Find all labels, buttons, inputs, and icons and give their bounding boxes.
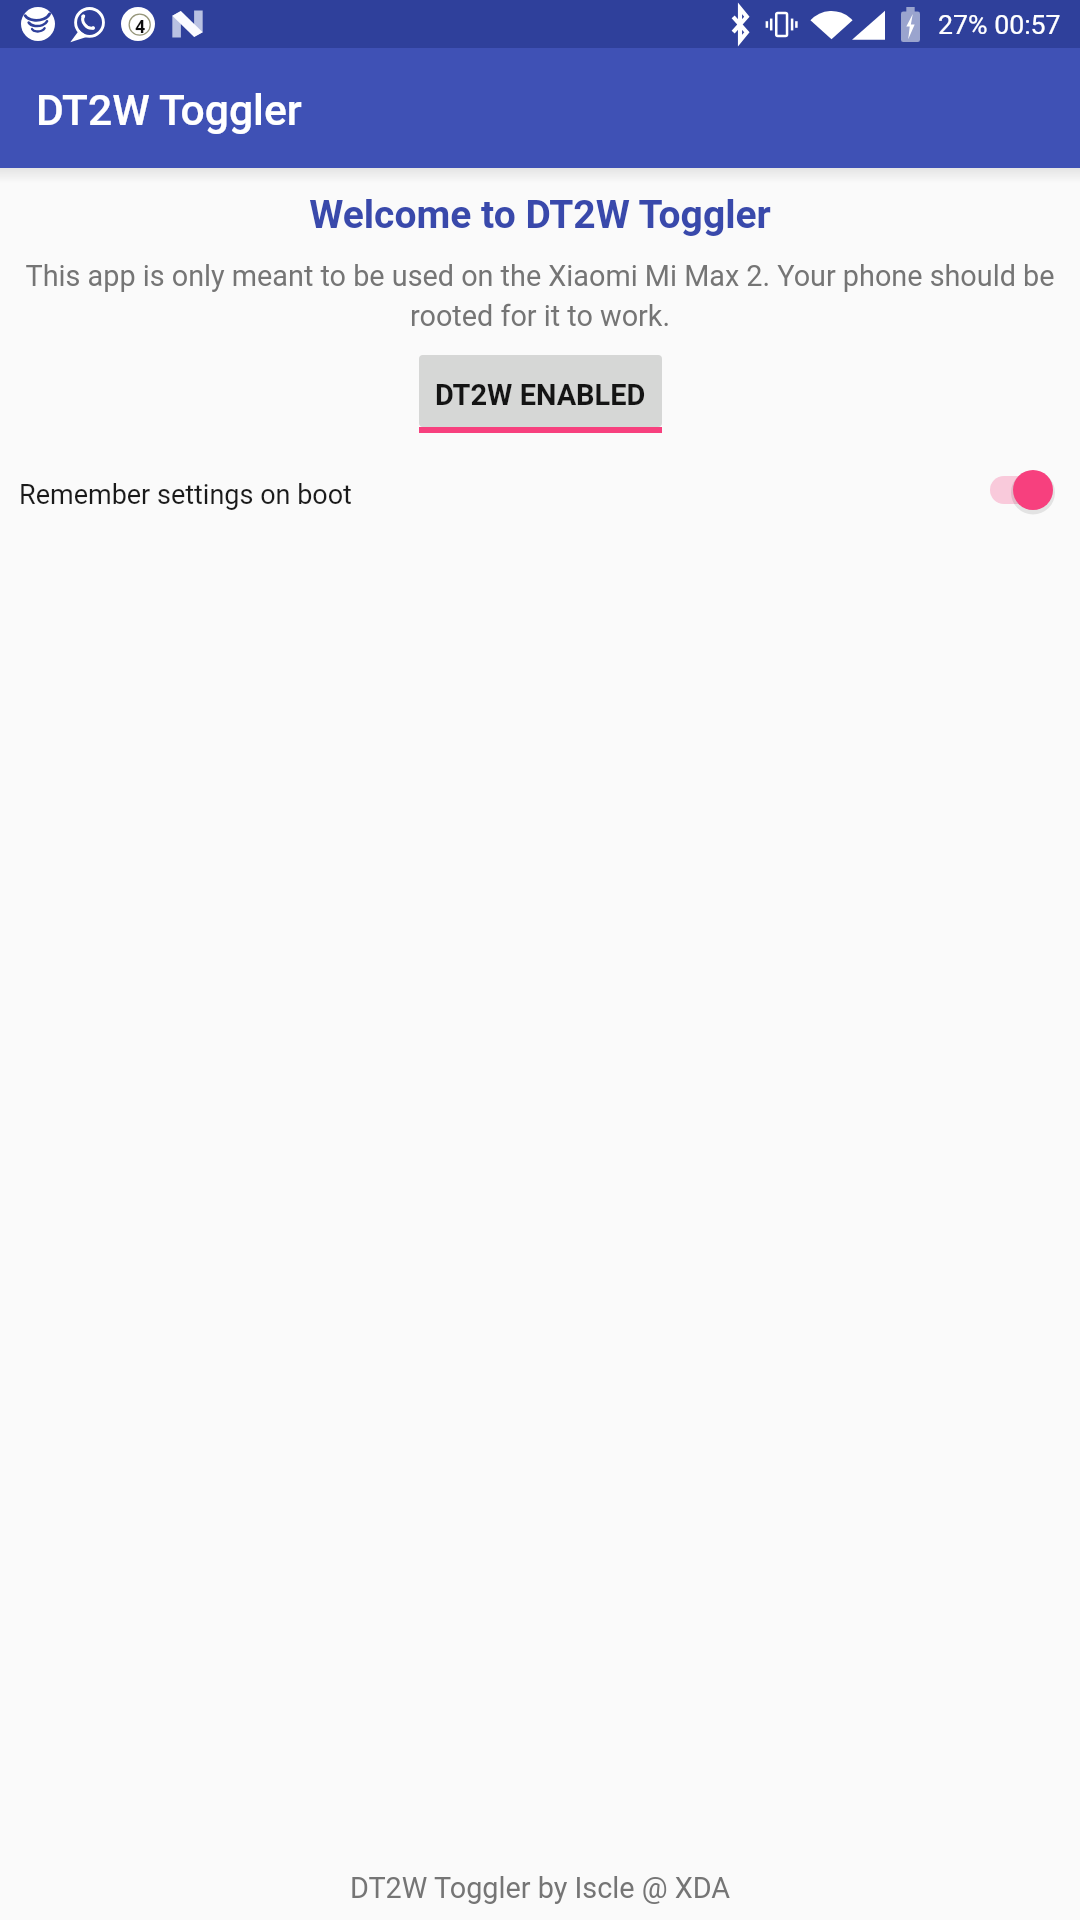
staticText: DT2W Toggler	[36, 85, 302, 135]
button[interactable]: Remember settings on boot	[990, 469, 1053, 511]
staticText: DT2W Toggler by Iscle @ XDA	[0, 1871, 1080, 1905]
staticText: DT2W ENABLED	[435, 378, 646, 412]
staticText: Remember settings on boot	[19, 479, 352, 511]
button[interactable]: DT2W ENABLED	[419, 355, 662, 427]
staticText: Welcome to DT2W Toggler	[0, 192, 1080, 238]
staticText: 27% 00:57	[938, 9, 1061, 40]
button[interactable]: Remember settings on boot	[0, 457, 1080, 532]
staticText: This app is only meant to be used on the…	[12, 259, 1068, 333]
staticText: 4	[135, 16, 146, 37]
